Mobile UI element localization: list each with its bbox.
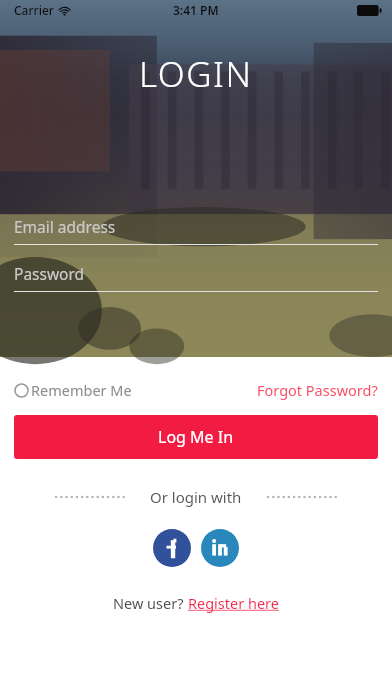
- staticText: Register here: [188, 593, 279, 613]
- staticText: Email address: [14, 216, 116, 237]
- staticText: Carrier: [14, 2, 54, 18]
- button[interactable]: Login with Facebook: [153, 529, 191, 567]
- staticText: Or login with: [150, 487, 242, 507]
- button[interactable]: Email address: [14, 216, 378, 245]
- button[interactable]: Log Me In: [14, 415, 378, 459]
- button[interactable]: Login with LinkedIn: [201, 529, 239, 567]
- staticText: Forgot Password?: [257, 380, 378, 400]
- button[interactable]: Forgot Password?: [257, 380, 378, 400]
- button[interactable]: Remember Me: [14, 380, 138, 400]
- staticText: Log Me In: [158, 426, 234, 448]
- staticText: 3:41 PM: [173, 2, 219, 18]
- staticText: New user?: [113, 593, 188, 613]
- button[interactable]: Password: [14, 263, 378, 292]
- staticText: Password: [14, 263, 85, 284]
- staticText: LOGIN: [139, 50, 253, 98]
- staticText: Remember Me: [31, 380, 132, 400]
- button[interactable]: Register here: [188, 593, 279, 613]
